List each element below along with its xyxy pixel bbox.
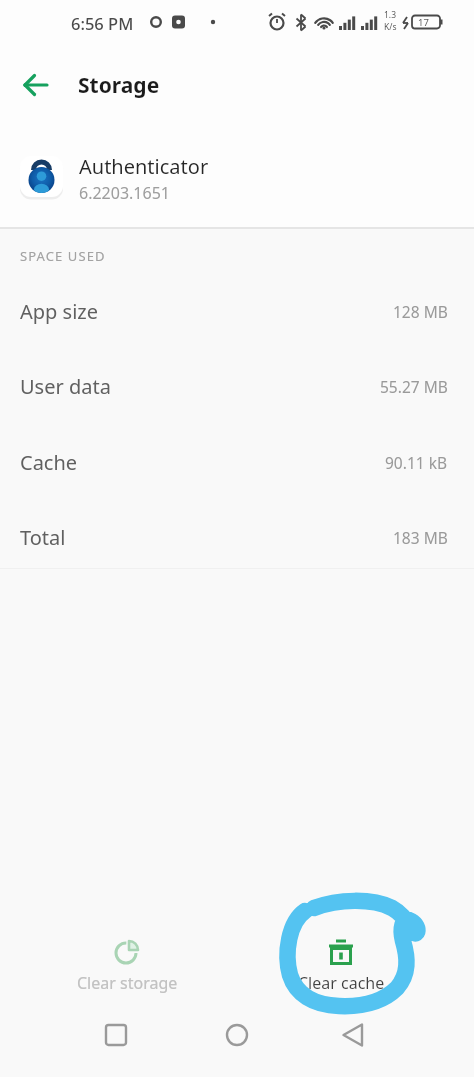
button[interactable]: Clear storage [47,938,207,1010]
staticText: Cache [20,449,78,476]
staticText: Total [20,524,66,551]
button[interactable]: User data [0,349,474,424]
staticText: 55.27 MB [380,376,448,397]
staticText: App size [20,298,98,325]
staticText: K/s [384,21,397,33]
staticText: 183 MB [393,527,448,548]
staticText: SPACE USED [20,247,106,265]
staticText: Clear cache [298,972,385,994]
button[interactable]: Authenticator [0,140,474,216]
staticText: Storage [78,71,160,100]
staticText: 128 MB [393,301,448,322]
button[interactable]: App size [0,274,474,349]
button[interactable] [329,1011,377,1059]
staticText: 6:56 PM [71,12,134,34]
staticText: 6.2203.1651 [79,182,170,204]
staticText: Authenticator [79,153,209,180]
button[interactable]: Total [0,500,474,575]
staticText: 1.3 [384,9,397,21]
button[interactable]: Cache [0,425,474,500]
staticText: Clear storage [77,972,178,994]
button[interactable] [14,63,58,107]
staticText: User data [20,373,111,400]
button[interactable]: Clear cache [261,938,421,1010]
button[interactable] [92,1011,140,1059]
button[interactable] [213,1011,261,1059]
staticText: 90.11 kB [385,452,448,473]
staticText: 17 [418,16,429,29]
